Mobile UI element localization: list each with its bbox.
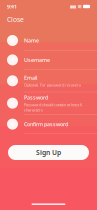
staticText: Name [24,37,39,44]
button[interactable]: ✕ [0,70,97,92]
staticText: 9:41 [7,3,17,10]
staticText: Close [7,15,24,24]
button[interactable]: ✕ [0,50,97,70]
staticText: Sign Up [36,148,61,157]
staticText: Optional. For password recovery [24,82,81,87]
staticText: Password [24,94,48,101]
button[interactable]: ✕ [0,31,97,50]
staticText: ▮▮▮ [70,4,76,9]
button[interactable]: Sign Up [8,145,89,160]
staticText: Email [24,74,37,81]
staticText: Username [24,56,50,63]
staticText: Confirm password [24,121,68,128]
button[interactable]: Close [0,12,31,27]
staticText: Password should contain at least 6 chara… [24,102,82,112]
staticText: ≋ [77,3,81,10]
button[interactable]: ✕ [0,115,97,134]
button[interactable]: ✕ [0,92,97,115]
